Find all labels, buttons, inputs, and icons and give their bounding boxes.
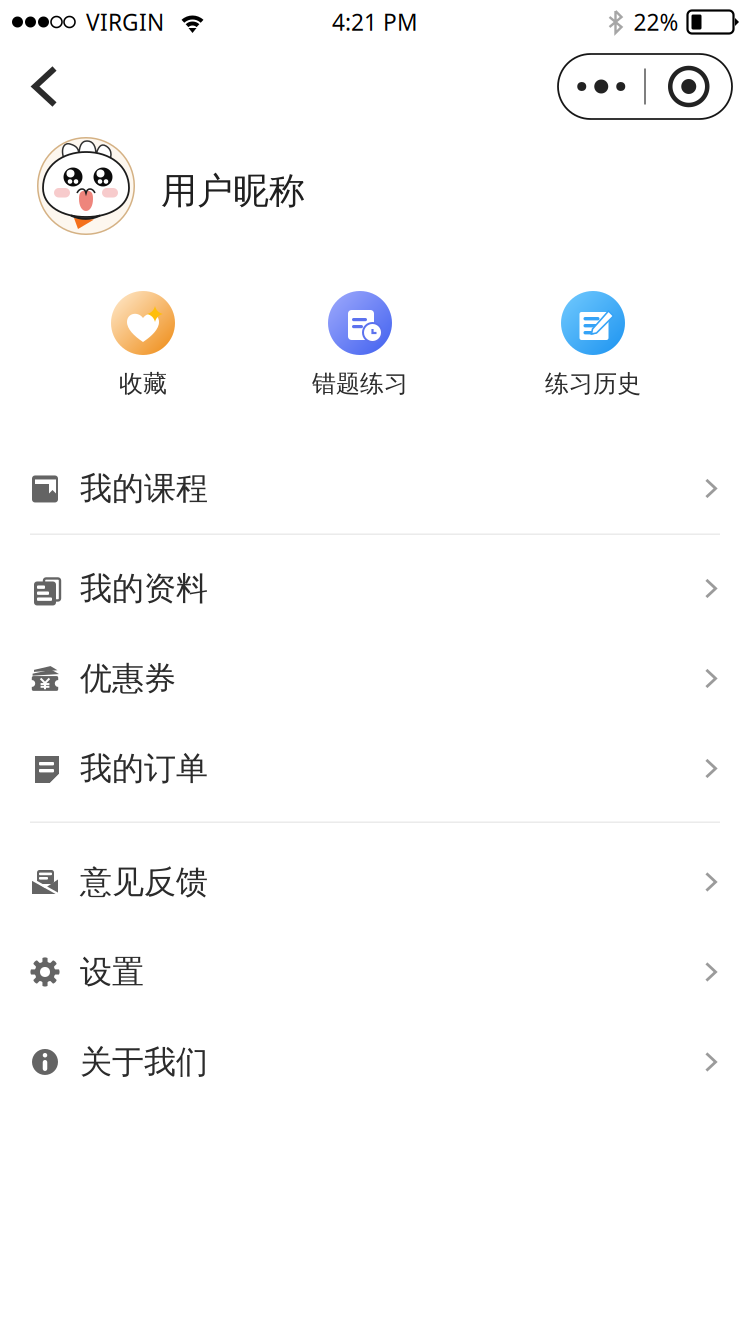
staticText: 练习历史	[545, 369, 641, 398]
button[interactable]: More options	[558, 54, 732, 119]
staticText: 关于我们	[80, 1042, 208, 1082]
staticText: 我的资料	[80, 569, 208, 608]
staticText: 设置	[80, 952, 144, 992]
staticText: VIRGIN	[86, 7, 164, 37]
staticText: 4:21 PM	[332, 7, 418, 37]
button[interactable]: Back	[0, 54, 84, 119]
button[interactable]: 我的资料	[0, 543, 750, 633]
button[interactable]: 关于我们	[0, 1017, 750, 1107]
staticText: 意见反馈	[80, 862, 208, 902]
staticText: 用户昵称	[161, 169, 305, 213]
staticText: 优惠券	[80, 659, 176, 698]
button[interactable]: 收藏	[83, 291, 203, 398]
button[interactable]: 意见反馈	[0, 837, 750, 927]
button[interactable]: 练习历史	[533, 291, 653, 398]
staticText: 我的课程	[80, 469, 208, 508]
staticText: 22%	[633, 7, 678, 37]
button[interactable]: 设置	[0, 927, 750, 1017]
button[interactable]: 我的订单	[0, 723, 750, 813]
button[interactable]: 我的课程	[0, 443, 750, 533]
staticText: 收藏	[119, 369, 167, 398]
button[interactable]: 错题练习	[300, 291, 420, 398]
button[interactable]: 优惠券	[0, 633, 750, 723]
staticText: 错题练习	[312, 369, 408, 398]
staticText: 我的订单	[80, 749, 208, 788]
